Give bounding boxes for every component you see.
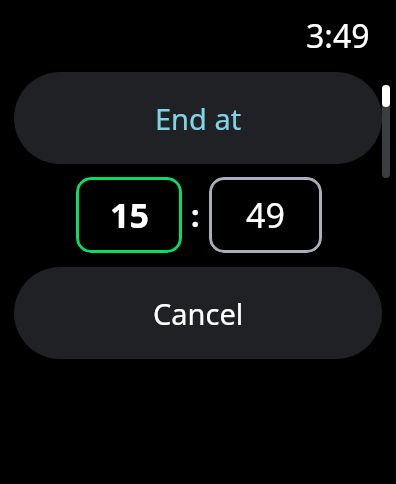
staticText: : xyxy=(191,195,200,236)
staticText: End at xyxy=(155,99,242,138)
button[interactable]: Cancel xyxy=(14,267,382,359)
button[interactable]: End at xyxy=(14,72,382,164)
button[interactable]: Minutes 15 xyxy=(76,177,182,253)
staticText: 3:49 xyxy=(306,14,370,58)
staticText: 49 xyxy=(246,192,285,238)
staticText: Cancel xyxy=(153,294,244,333)
button[interactable]: Seconds 49 xyxy=(209,177,322,253)
staticText: 15 xyxy=(110,192,149,238)
